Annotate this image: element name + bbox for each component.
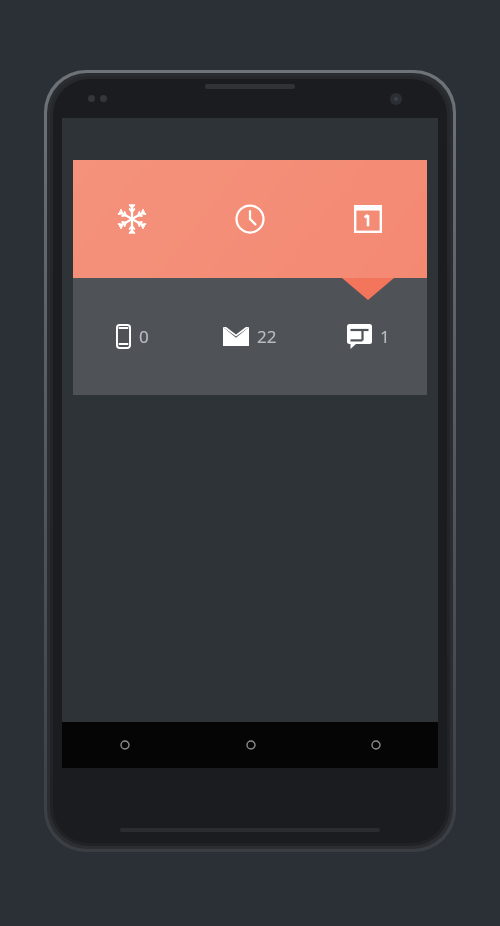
button[interactable]: Calendar [309,160,427,278]
staticText: 0 [139,325,149,348]
button[interactable]: Home [188,722,313,768]
staticText: 22 [257,325,277,348]
button[interactable]: 1 [309,278,427,395]
button[interactable]: 0 [73,278,191,395]
button[interactable]: 22 [191,278,309,395]
button[interactable]: Clock [191,160,309,278]
button[interactable]: Weather [73,160,191,278]
button[interactable]: Recents [313,722,438,768]
staticText: 1 [380,325,390,348]
button[interactable]: Back [62,722,188,768]
